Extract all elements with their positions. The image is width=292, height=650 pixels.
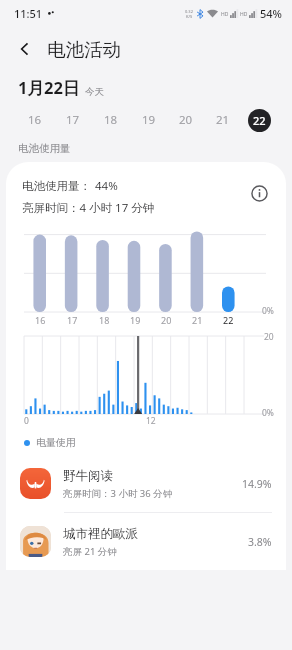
staticText: 16 (28, 112, 42, 128)
staticText: 16 (35, 314, 46, 326)
staticText: 0 (24, 415, 29, 427)
staticText: 21 (192, 314, 203, 326)
staticText: 12 (146, 415, 156, 427)
staticText: 20 (161, 314, 172, 326)
staticText: 电池使用量： (22, 179, 91, 193)
staticText: 电池使用量 (18, 142, 71, 155)
button[interactable]: Information (244, 178, 274, 208)
button[interactable]: 城市裡的歐派 (6, 513, 286, 570)
staticText: 22 (223, 314, 234, 326)
staticText: 0% (262, 407, 274, 419)
staticText: 电池活动 (47, 38, 121, 61)
staticText: 21 (216, 112, 230, 128)
staticText: 22 (253, 113, 266, 128)
staticText: 野牛阅读 (63, 468, 113, 484)
staticText: 19 (142, 112, 156, 128)
button[interactable]: 20 (167, 107, 204, 133)
button[interactable]: 野牛阅读 (6, 455, 286, 512)
staticText: 电量使用 (36, 436, 76, 449)
staticText: 亮屏时间：3 小时 36 分钟 (63, 487, 173, 500)
staticText: 城市裡的歐派 (63, 526, 138, 542)
staticText: 11:51 (14, 6, 43, 21)
staticText: HD (240, 11, 248, 18)
staticText: 亮屏 21 分钟 (63, 545, 117, 558)
staticText: 3.8% (248, 535, 272, 549)
button[interactable]: 17 (54, 107, 92, 133)
staticText: K/S (186, 14, 193, 19)
staticText: 0% (262, 305, 274, 317)
staticText: 44% (95, 178, 118, 194)
button[interactable]: 19 (130, 107, 167, 133)
staticText: 0.32 (185, 9, 193, 14)
staticText: 亮屏时间：4 小时 17 分钟 (22, 200, 155, 216)
staticText: HD (221, 11, 229, 18)
staticText: 18 (99, 314, 110, 326)
staticText: 18 (104, 112, 118, 128)
button[interactable]: 22 (241, 107, 278, 133)
button[interactable]: 16 (16, 107, 54, 133)
button[interactable]: 21 (204, 107, 241, 133)
staticText: 17 (67, 314, 78, 326)
staticText: 今天 (85, 86, 104, 98)
staticText: 17 (66, 112, 80, 128)
staticText: 19 (130, 314, 141, 326)
button[interactable]: 18 (92, 107, 130, 133)
button[interactable]: Back (6, 30, 44, 68)
staticText: 1月22日 (18, 76, 80, 99)
staticText: 20 (264, 331, 274, 343)
staticText: 20 (179, 112, 193, 128)
staticText: 14.9% (242, 477, 272, 491)
staticText: 54% (260, 6, 282, 21)
